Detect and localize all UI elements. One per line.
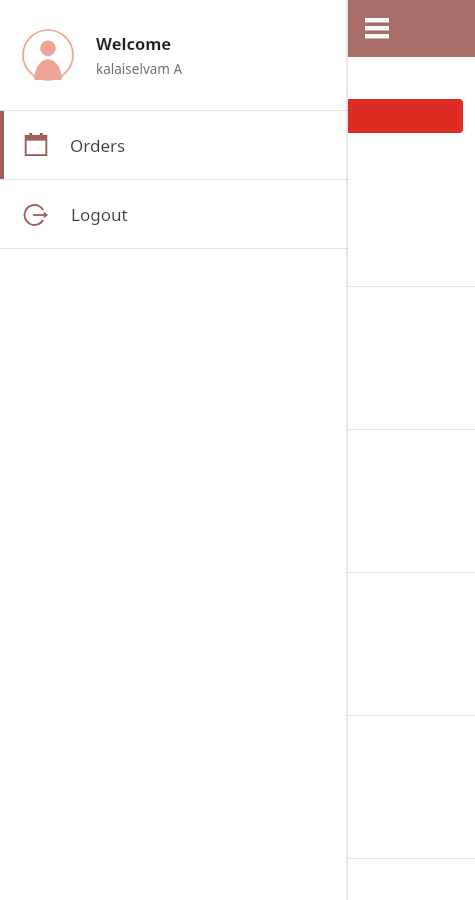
button[interactable]: PICKUP	[0, 144, 475, 286]
staticText: Order Posted	[41, 176, 129, 195]
button[interactable]: Logout	[0, 180, 348, 248]
staticText: Logout	[71, 203, 128, 226]
button[interactable]: Orders	[0, 111, 348, 179]
staticText: Order Id :	[41, 206, 105, 225]
button[interactable]: Open navigation menu	[362, 13, 392, 43]
staticText: Deva kumar	[59, 236, 139, 255]
staticText: kalaiselvam A	[96, 60, 183, 78]
staticText: PICKUP	[10, 202, 28, 228]
staticText: Orders	[70, 134, 126, 157]
staticText: Welcome	[96, 32, 172, 54]
staticText: Pending	[212, 107, 263, 125]
button[interactable]: Pending	[12, 99, 463, 133]
button[interactable]: Welcome	[0, 0, 348, 110]
